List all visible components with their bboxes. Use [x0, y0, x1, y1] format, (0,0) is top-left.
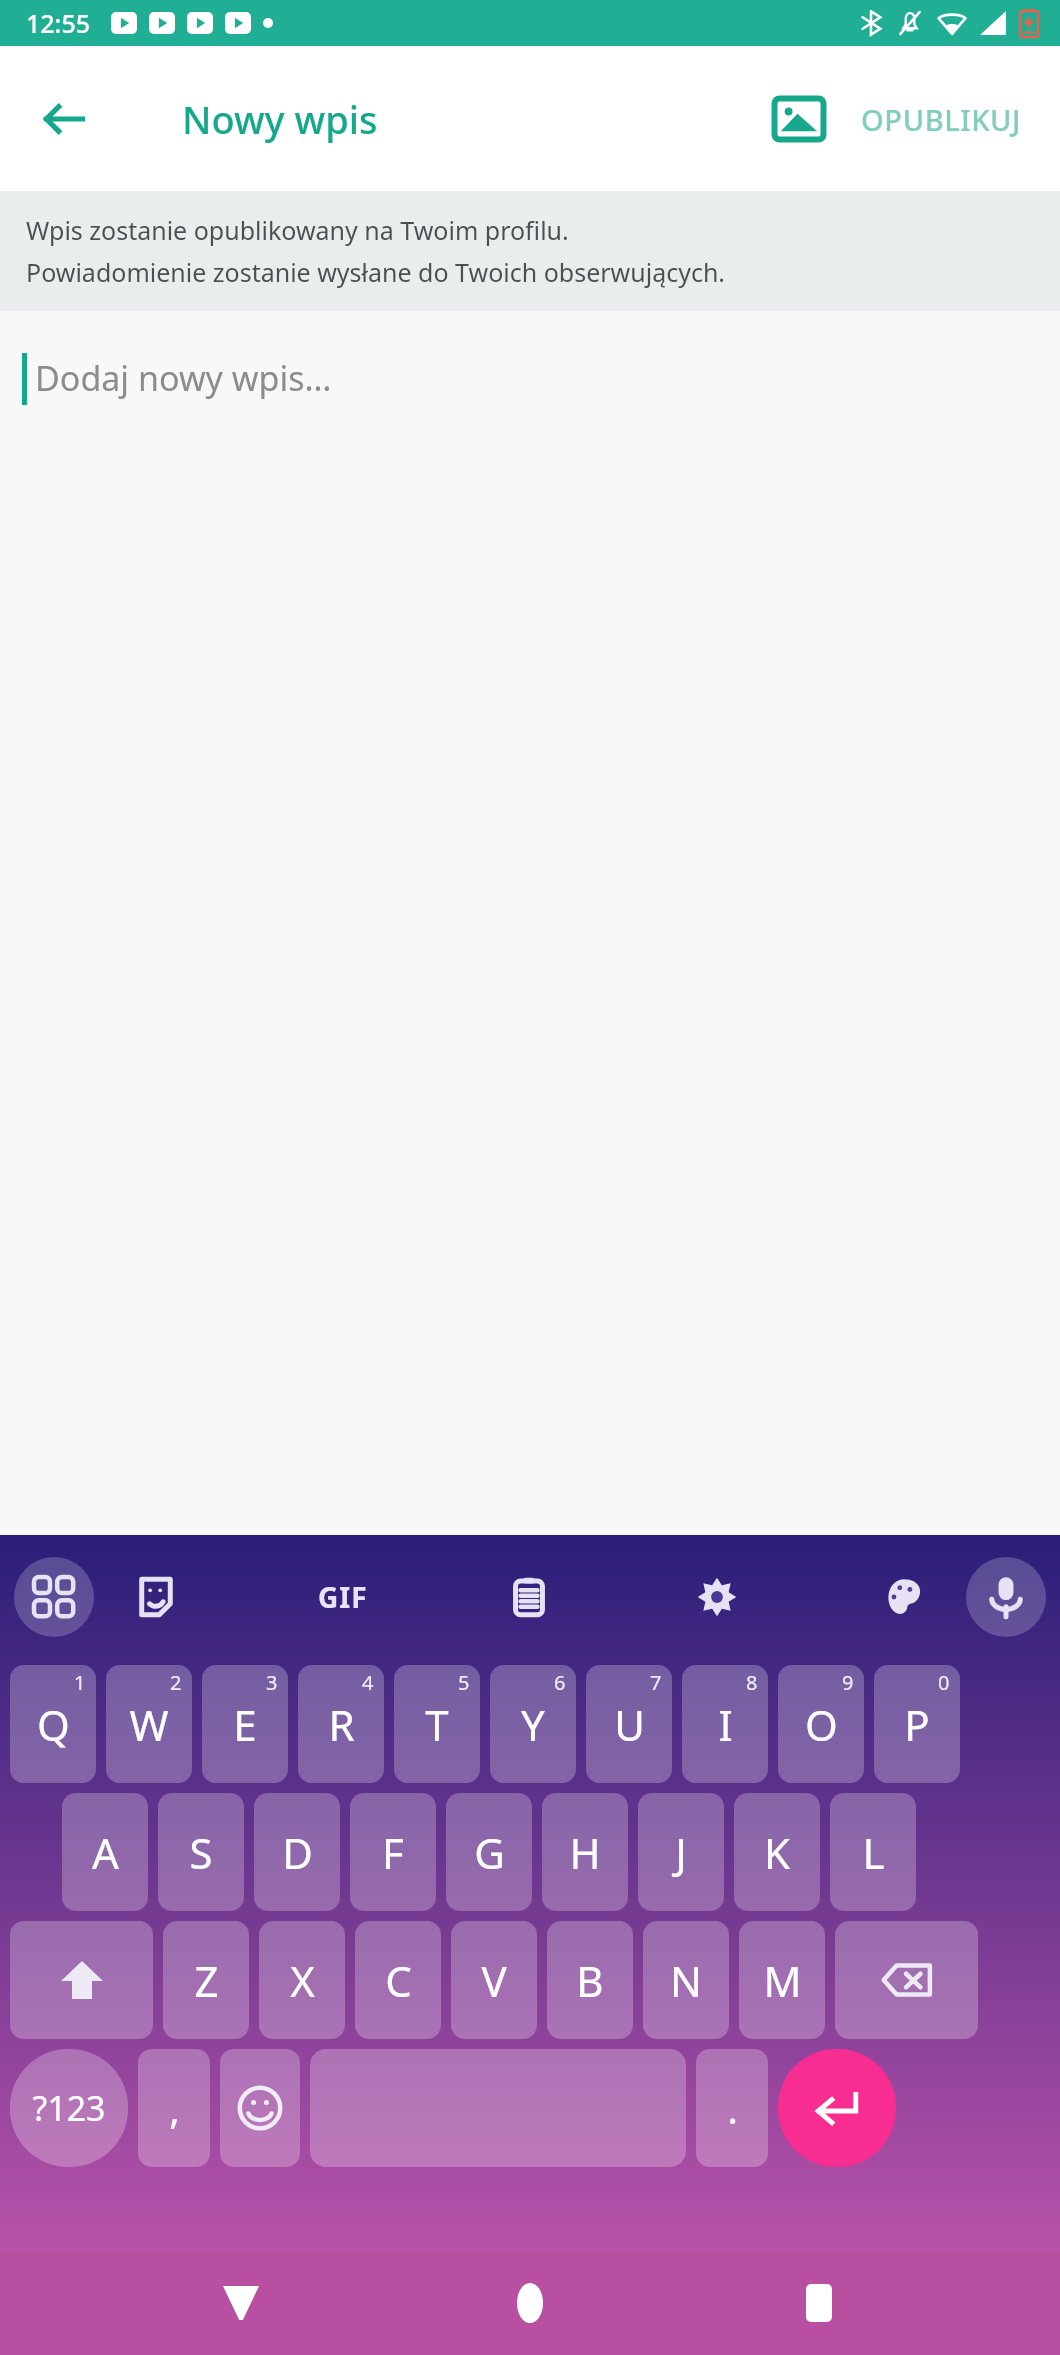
- staticText: Powiadomienie zostanie wysłane do Twoich…: [26, 255, 726, 289]
- staticText: P: [904, 1696, 930, 1753]
- staticText: Z: [194, 1952, 219, 2009]
- staticText: OPUBLIKUJ: [861, 100, 1022, 139]
- staticText: Nowy wpis: [182, 93, 378, 145]
- button[interactable]: Enter: [778, 2049, 896, 2167]
- staticText: J: [675, 1824, 687, 1881]
- staticText: C: [385, 1952, 412, 2009]
- button[interactable]: A: [62, 1793, 148, 1911]
- button[interactable]: O: [778, 1665, 864, 1783]
- staticText: 7: [650, 1669, 662, 1696]
- staticText: I: [718, 1696, 733, 1753]
- staticText: 0: [938, 1669, 950, 1696]
- staticText: D: [282, 1824, 313, 1881]
- staticText: ,: [169, 2081, 180, 2135]
- button[interactable]: T: [394, 1665, 480, 1783]
- staticText: V: [481, 1952, 507, 2009]
- staticText: Y: [521, 1696, 545, 1753]
- staticText: Wpis zostanie opublikowany na Twoim prof…: [26, 213, 569, 247]
- button[interactable]: Wstecz: [24, 79, 104, 159]
- button[interactable]: J: [638, 1793, 724, 1911]
- staticText: 9: [842, 1669, 854, 1696]
- staticText: E: [233, 1696, 257, 1753]
- button[interactable]: Ostatnie aplikacje: [771, 2255, 867, 2351]
- staticText: L: [862, 1824, 885, 1881]
- button[interactable]: L: [830, 1793, 916, 1911]
- button[interactable]: Naklejki: [120, 1561, 192, 1633]
- staticText: W: [129, 1696, 169, 1753]
- button[interactable]: OPUBLIKUJ: [841, 84, 1042, 155]
- button[interactable]: B: [547, 1921, 633, 2039]
- staticText: Q: [37, 1696, 70, 1753]
- staticText: 4: [362, 1669, 374, 1696]
- button[interactable]: Dyktowanie głosowe: [966, 1557, 1046, 1637]
- staticText: ?123: [32, 2085, 106, 2131]
- staticText: X: [290, 1952, 315, 2009]
- staticText: GIF: [318, 1578, 368, 1616]
- button[interactable]: Ukryj klawiaturę: [193, 2255, 289, 2351]
- button[interactable]: Schowek: [493, 1561, 565, 1633]
- button[interactable]: .: [696, 2049, 768, 2167]
- button[interactable]: E: [202, 1665, 288, 1783]
- button[interactable]: U: [586, 1665, 672, 1783]
- button[interactable]: G: [446, 1793, 532, 1911]
- staticText: 12:55: [26, 6, 91, 40]
- staticText: 5: [458, 1669, 470, 1696]
- button[interactable]: K: [734, 1793, 820, 1911]
- staticText: 8: [746, 1669, 758, 1696]
- button[interactable]: ,: [138, 2049, 210, 2167]
- button[interactable]: Ustawienia: [681, 1561, 753, 1633]
- button[interactable]: Dodaj nowy wpis…: [0, 311, 1060, 1411]
- staticText: S: [189, 1824, 213, 1881]
- staticText: K: [764, 1824, 790, 1881]
- button[interactable]: Shift: [10, 1921, 153, 2039]
- button[interactable]: S: [158, 1793, 244, 1911]
- staticText: F: [382, 1824, 404, 1881]
- button[interactable]: C: [355, 1921, 441, 2039]
- staticText: 3: [266, 1669, 278, 1696]
- button[interactable]: GIF: [308, 1568, 378, 1626]
- staticText: B: [576, 1952, 604, 2009]
- staticText: H: [569, 1824, 601, 1881]
- button[interactable]: I: [682, 1665, 768, 1783]
- staticText: 1: [74, 1669, 86, 1696]
- button[interactable]: M: [739, 1921, 825, 2039]
- button[interactable]: ?123: [10, 2049, 128, 2167]
- button[interactable]: H: [542, 1793, 628, 1911]
- button[interactable]: D: [254, 1793, 340, 1911]
- staticText: U: [614, 1696, 645, 1753]
- button[interactable]: Z: [163, 1921, 249, 2039]
- button[interactable]: Przełącz aplikację: [14, 1557, 94, 1637]
- button[interactable]: Spacja: [310, 2049, 686, 2167]
- button[interactable]: P: [874, 1665, 960, 1783]
- staticText: 6: [554, 1669, 566, 1696]
- staticText: 2: [170, 1669, 182, 1696]
- staticText: .: [727, 2081, 738, 2135]
- button[interactable]: Motyw: [868, 1561, 940, 1633]
- staticText: O: [805, 1696, 838, 1753]
- button[interactable]: N: [643, 1921, 729, 2039]
- button[interactable]: Backspace: [835, 1921, 978, 2039]
- staticText: M: [763, 1952, 802, 2009]
- button[interactable]: Y: [490, 1665, 576, 1783]
- button[interactable]: W: [106, 1665, 192, 1783]
- staticText: G: [474, 1824, 505, 1881]
- staticText: N: [670, 1952, 702, 2009]
- staticText: T: [425, 1696, 449, 1753]
- button[interactable]: R: [298, 1665, 384, 1783]
- button[interactable]: Emotikony: [220, 2049, 300, 2167]
- button[interactable]: Dodaj zdjęcie: [757, 77, 841, 161]
- staticText: A: [92, 1824, 119, 1881]
- staticText: R: [328, 1696, 355, 1753]
- staticText: Dodaj nowy wpis…: [35, 355, 332, 401]
- button[interactable]: Ekran główny: [482, 2255, 578, 2351]
- button[interactable]: Q: [10, 1665, 96, 1783]
- button[interactable]: X: [259, 1921, 345, 2039]
- button[interactable]: V: [451, 1921, 537, 2039]
- button[interactable]: F: [350, 1793, 436, 1911]
